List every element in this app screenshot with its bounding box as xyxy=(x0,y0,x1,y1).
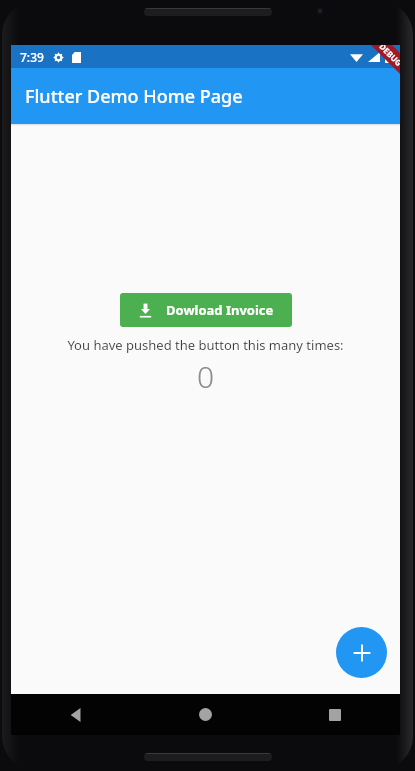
button[interactable]: Recent apps xyxy=(270,694,400,735)
button[interactable]: Increment xyxy=(336,627,387,678)
button[interactable]: Back xyxy=(11,694,140,735)
button[interactable]: Dowload Invoice xyxy=(120,293,292,327)
staticText: DEBUG xyxy=(377,45,400,68)
staticText: You have pushed the button this many tim… xyxy=(67,336,344,354)
staticText: 0 xyxy=(197,356,215,397)
staticText: Dowload Invoice xyxy=(166,301,274,319)
staticText: Flutter Demo Home Page xyxy=(25,84,243,109)
staticText: 7:39 xyxy=(20,49,44,65)
button[interactable]: Home xyxy=(140,694,270,735)
